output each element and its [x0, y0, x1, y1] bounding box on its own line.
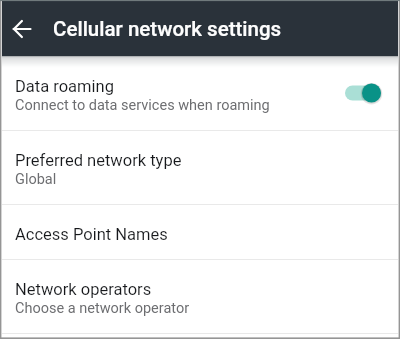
- staticText: Data roaming: [15, 77, 114, 96]
- staticText: Access Point Names: [15, 225, 168, 244]
- staticText: Choose a network operator: [15, 300, 190, 317]
- button[interactable]: Access Point Names: [2, 205, 398, 259]
- button[interactable]: Data roaming toggle: [327, 56, 398, 130]
- button[interactable]: Network operators: [2, 260, 398, 333]
- staticText: Network operators: [15, 280, 152, 299]
- staticText: Cellular network settings: [53, 17, 282, 41]
- staticText: Connect to data services when roaming: [15, 97, 270, 114]
- button[interactable]: Preferred network type: [2, 131, 398, 204]
- button[interactable]: Data roaming: [2, 56, 398, 130]
- button[interactable]: Back: [7, 14, 37, 44]
- staticText: Global: [15, 171, 57, 188]
- staticText: Preferred network type: [15, 151, 182, 170]
